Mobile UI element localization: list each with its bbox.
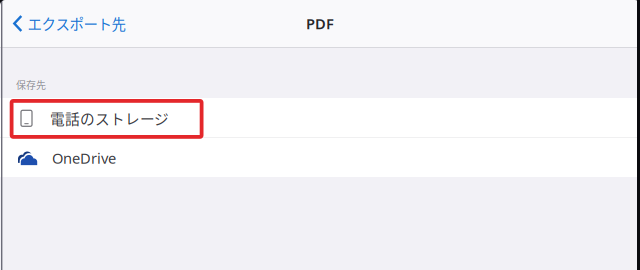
staticText: 保存先 — [16, 77, 46, 92]
staticText: エクスポート先 — [28, 13, 126, 34]
staticText: OneDrive — [52, 148, 116, 168]
button[interactable]: 電話のストレージ — [0, 98, 640, 137]
button[interactable]: エクスポート先 — [0, 0, 138, 47]
staticText: PDF — [306, 14, 334, 33]
button[interactable]: OneDrive — [0, 138, 640, 177]
staticText: 電話のストレージ — [50, 107, 169, 129]
